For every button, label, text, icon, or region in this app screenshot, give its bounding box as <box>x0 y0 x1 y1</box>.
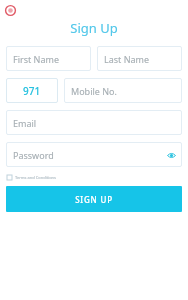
staticText: Sign Up <box>70 19 118 37</box>
button[interactable]: SIGN UP <box>6 186 182 212</box>
staticText: SIGN UP <box>75 194 113 205</box>
staticText: Password <box>13 149 54 161</box>
button[interactable]: 971 <box>6 78 58 103</box>
staticText: First Name <box>13 53 59 65</box>
button[interactable]: Last Name <box>97 46 182 71</box>
staticText: Email <box>13 117 37 129</box>
button[interactable]: Email <box>6 110 182 135</box>
button[interactable]: Mobile No. <box>64 78 182 103</box>
staticText: 971 <box>23 84 41 98</box>
button[interactable]: Password <box>6 142 182 167</box>
button[interactable]: Close <box>3 3 17 17</box>
staticText: Last Name <box>104 53 150 65</box>
button[interactable]: Terms and Conditions <box>7 175 56 180</box>
staticText: Mobile No. <box>71 85 117 97</box>
button[interactable]: First Name <box>6 46 91 71</box>
staticText: Terms and Conditions <box>15 175 56 180</box>
button[interactable]: Show password <box>165 149 177 161</box>
